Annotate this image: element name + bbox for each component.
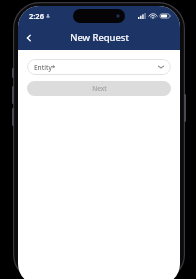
button[interactable]: Back (18, 27, 40, 49)
staticText: Entity* (34, 63, 56, 72)
button[interactable]: Next (27, 81, 171, 96)
staticText: Next (92, 84, 107, 93)
staticText: New Request (70, 31, 129, 44)
button[interactable]: Entity* (27, 59, 171, 75)
staticText: 2:26 (29, 11, 44, 21)
